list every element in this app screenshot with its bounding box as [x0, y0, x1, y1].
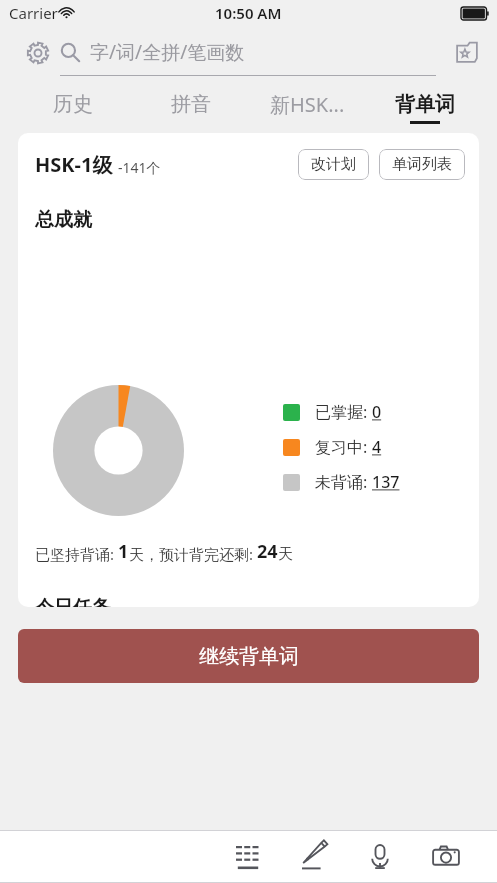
- staticText: 继续背单词: [199, 644, 299, 669]
- staticText: 已坚持背诵:: [35, 544, 118, 564]
- button[interactable]: 拼音: [132, 85, 249, 127]
- staticText: 4: [372, 436, 382, 458]
- staticText: 新HSK...: [270, 91, 345, 118]
- staticText: 背单词: [395, 92, 455, 117]
- button[interactable]: 已掌握:: [283, 401, 382, 423]
- staticText: 天，预计背完还剩:: [129, 544, 257, 564]
- staticText: 1: [118, 539, 129, 564]
- button[interactable]: Keyboard: [225, 834, 271, 880]
- staticText: 总成就: [35, 208, 92, 232]
- staticText: 天: [278, 545, 293, 564]
- staticText: 0: [372, 401, 382, 423]
- staticText: -141个: [118, 158, 161, 177]
- staticText: 字/词/全拼/笔画数: [90, 39, 245, 65]
- staticText: 已掌握:: [315, 401, 372, 423]
- button[interactable]: 字/词/全拼/笔画数: [60, 32, 436, 76]
- button[interactable]: Favorites: [449, 35, 485, 71]
- button[interactable]: 未背诵:: [283, 471, 400, 493]
- staticText: 未背诵:: [315, 471, 372, 493]
- staticText: 历史: [53, 92, 93, 117]
- staticText: 复习中:: [315, 436, 372, 458]
- staticText: 单词列表: [392, 155, 452, 174]
- button[interactable]: 继续背单词: [18, 629, 479, 683]
- button[interactable]: 改计划: [298, 149, 369, 180]
- staticText: 拼音: [171, 92, 211, 117]
- button[interactable]: 背单词: [366, 85, 483, 127]
- button[interactable]: Settings: [20, 35, 56, 71]
- button[interactable]: 新HSK...: [249, 85, 366, 127]
- button[interactable]: Camera: [423, 834, 469, 880]
- button[interactable]: Handwriting: [291, 834, 337, 880]
- staticText: 24: [257, 539, 278, 564]
- staticText: HSK-1级: [35, 151, 113, 178]
- staticText: 137: [372, 471, 400, 493]
- button[interactable]: 历史: [14, 85, 132, 127]
- button[interactable]: 复习中:: [283, 436, 382, 458]
- staticText: Carrier: [9, 3, 58, 23]
- staticText: 改计划: [311, 155, 356, 174]
- staticText: 10:50 AM: [215, 3, 282, 23]
- button[interactable]: 单词列表: [379, 149, 465, 180]
- button[interactable]: Voice input: [357, 834, 403, 880]
- staticText: 今日任务: [35, 596, 111, 607]
